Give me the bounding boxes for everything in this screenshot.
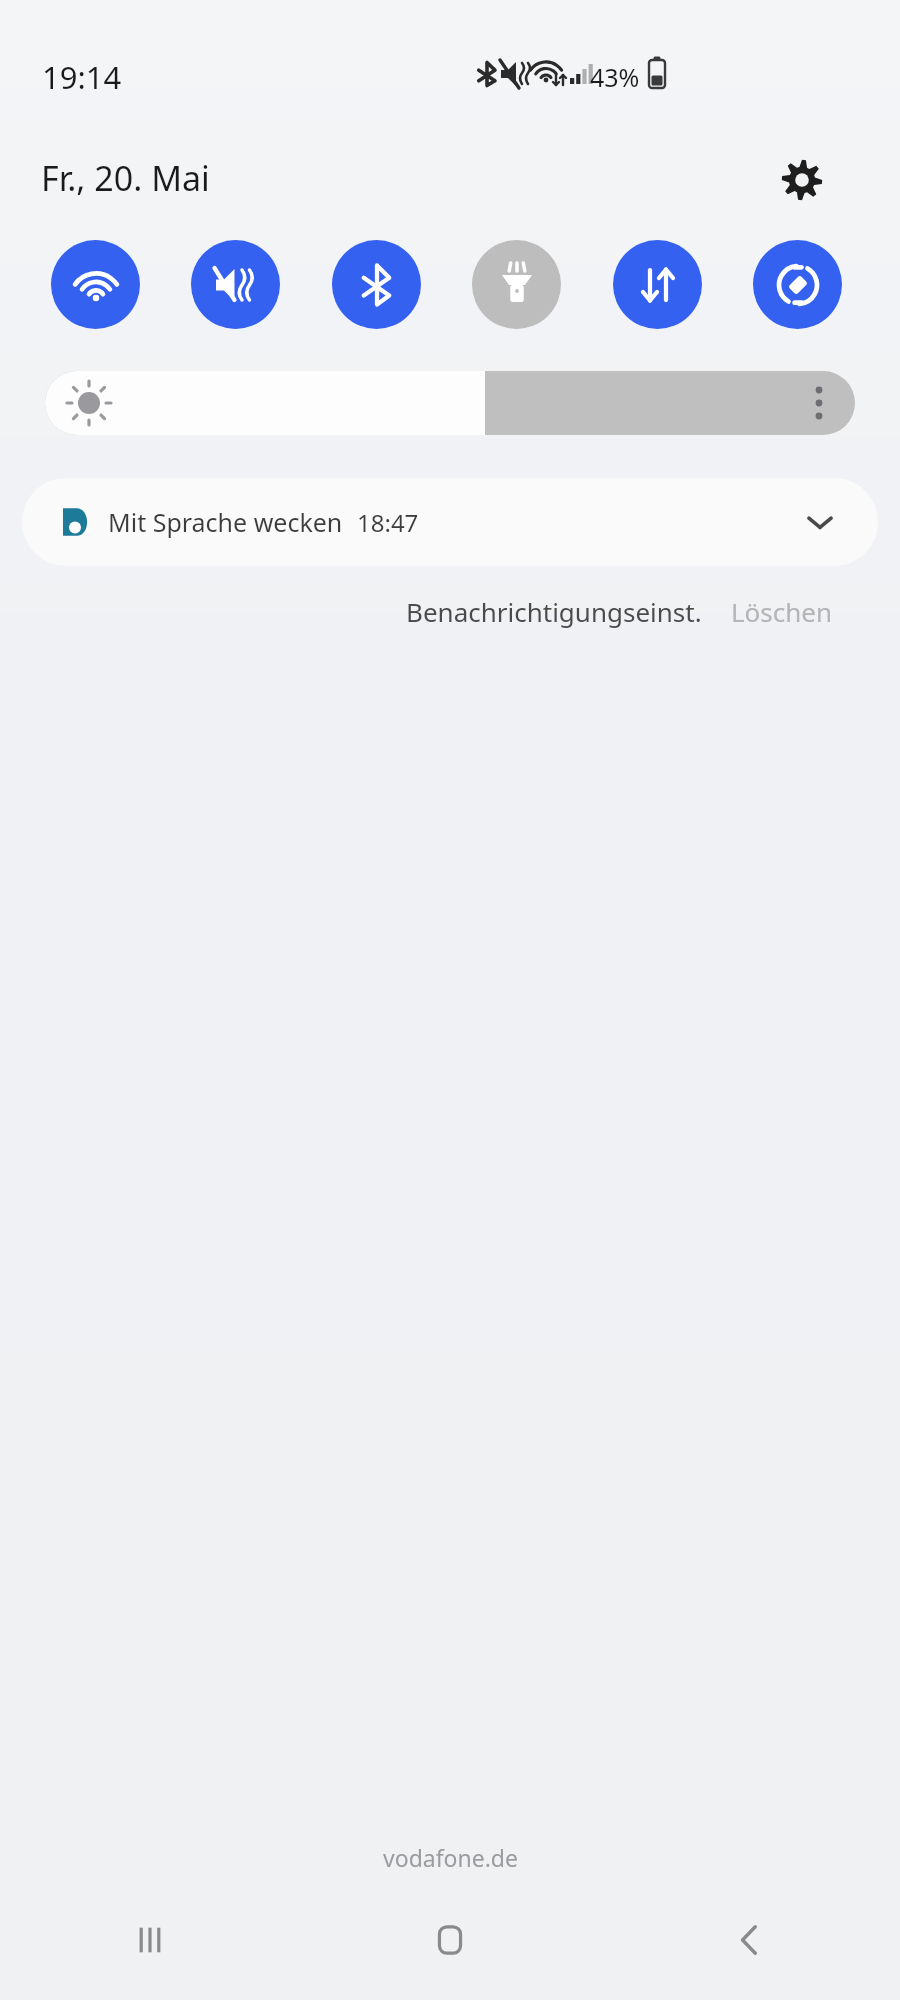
button[interactable]: Brightness xyxy=(45,371,855,435)
staticText: Mit Sprache wecken xyxy=(108,505,343,539)
staticText: Fr., 20. Mai xyxy=(41,155,210,201)
staticText: Löschen xyxy=(731,594,833,629)
staticText: vodafone.de xyxy=(383,1842,518,1873)
button[interactable]: Back xyxy=(600,1880,900,2000)
button[interactable]: Settings xyxy=(770,148,834,212)
button[interactable]: Löschen xyxy=(731,594,833,629)
button[interactable]: Benachrichtigungseinst. xyxy=(406,594,702,629)
staticText: Benachrichtigungseinst. xyxy=(406,594,702,629)
button[interactable]: Auto rotate xyxy=(753,240,842,329)
button[interactable]: Mit Sprache wecken xyxy=(22,478,878,566)
staticText: 43% xyxy=(590,60,640,94)
button[interactable]: Recent apps xyxy=(0,1880,300,2000)
button[interactable]: Mobile data xyxy=(613,240,702,329)
button[interactable]: Flashlight xyxy=(472,240,561,329)
button[interactable]: Wi-Fi xyxy=(51,240,140,329)
button[interactable]: Sound mode xyxy=(191,240,280,329)
button[interactable]: Home xyxy=(300,1880,600,2000)
button[interactable]: Expand notification xyxy=(796,498,844,546)
button[interactable]: Bluetooth xyxy=(332,240,421,329)
staticText: 19:14 xyxy=(42,56,122,98)
staticText: 18:47 xyxy=(357,506,419,539)
